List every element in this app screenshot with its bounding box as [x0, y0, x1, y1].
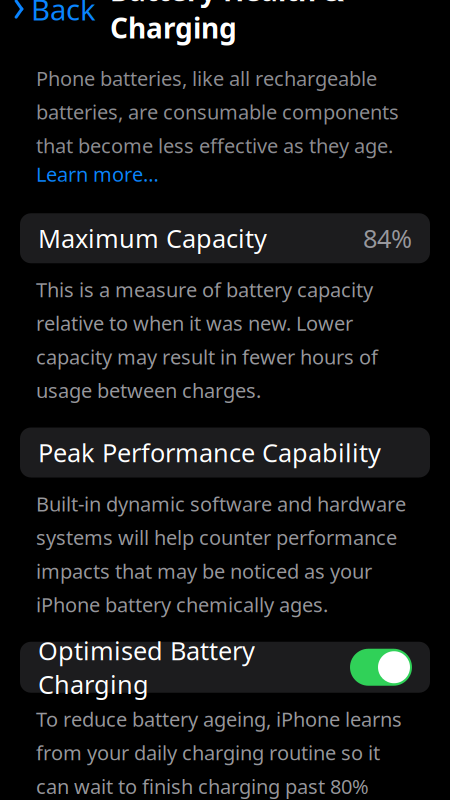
button[interactable]: Peak Performance Capability — [20, 427, 430, 477]
button[interactable]: Maximum Capacity — [20, 213, 430, 263]
button[interactable]: Back — [0, 0, 96, 34]
staticText: Phone batteries, like all rechargeable b… — [36, 65, 399, 159]
staticText: 84% — [363, 221, 412, 255]
staticText: Optimised Battery Charging — [38, 634, 255, 701]
staticText: Peak Performance Capability — [38, 436, 381, 469]
button[interactable]: Optimised Battery Charging — [20, 642, 430, 693]
staticText: Learn more… — [36, 161, 159, 187]
staticText: To reduce battery ageing, iPhone learns … — [36, 706, 402, 800]
staticText: This is a measure of battery capacity re… — [36, 276, 378, 403]
staticText: Back — [31, 0, 96, 28]
staticText: Built-in dynamic software and hardware s… — [36, 490, 406, 618]
button[interactable]: Learn more… — [0, 159, 195, 187]
staticText: Battery Health & Charging — [110, 0, 344, 46]
staticText: Maximum Capacity — [38, 221, 267, 255]
